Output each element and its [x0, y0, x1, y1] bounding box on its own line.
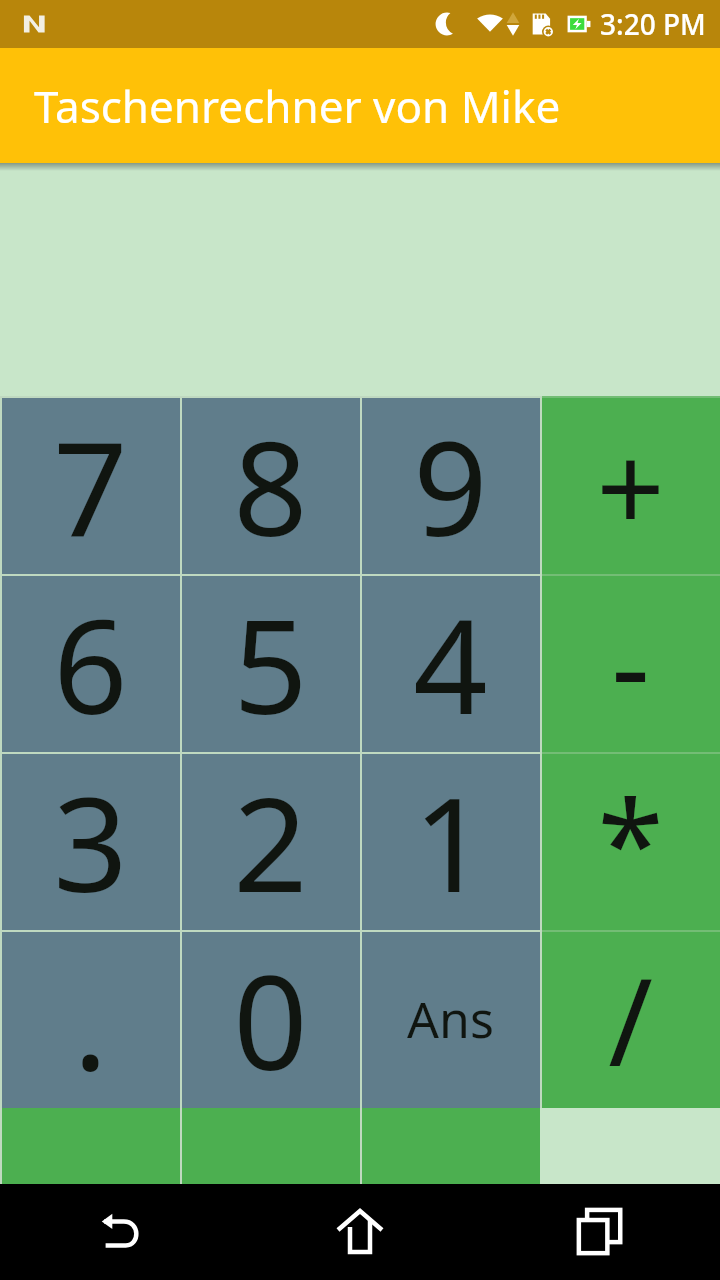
- staticText: 7: [53, 397, 128, 574]
- button[interactable]: Ans: [360, 930, 540, 1108]
- staticText: 3:20 PM: [600, 5, 706, 43]
- staticText: +: [596, 404, 665, 567]
- button[interactable]: Home: [240, 1184, 480, 1280]
- staticText: Ans: [407, 985, 494, 1053]
- staticText: DEL: [214, 1166, 327, 1242]
- button[interactable]: 1: [360, 752, 540, 930]
- staticText: Taschenrechner von Mike: [34, 76, 561, 136]
- button[interactable]: /: [540, 930, 720, 1108]
- button[interactable]: =: [0, 1108, 180, 1184]
- button[interactable]: AC: [360, 1108, 540, 1184]
- staticText: 5: [233, 575, 308, 752]
- staticText: -: [611, 582, 650, 745]
- button[interactable]: DEL: [180, 1108, 360, 1184]
- staticText: 0: [233, 931, 308, 1108]
- button[interactable]: 0: [180, 930, 360, 1108]
- button[interactable]: 3: [0, 752, 180, 930]
- staticText: =: [63, 1166, 118, 1242]
- button[interactable]: 2: [180, 752, 360, 930]
- staticText: 8: [233, 397, 308, 574]
- button[interactable]: *: [540, 752, 720, 930]
- button[interactable]: 8: [180, 396, 360, 574]
- button[interactable]: 4: [360, 574, 540, 752]
- staticText: 1: [413, 753, 488, 930]
- staticText: 9: [413, 397, 488, 574]
- staticText: AC: [411, 1166, 489, 1242]
- button[interactable]: 9: [360, 396, 540, 574]
- staticText: /: [608, 938, 653, 1101]
- button[interactable]: -: [540, 574, 720, 752]
- button[interactable]: Back: [0, 1184, 240, 1280]
- button[interactable]: 5: [180, 574, 360, 752]
- staticText: 2: [233, 753, 308, 930]
- staticText: 4: [413, 575, 488, 752]
- button[interactable]: +: [540, 396, 720, 574]
- button[interactable]: .: [0, 930, 180, 1108]
- button[interactable]: Recent apps: [480, 1184, 720, 1280]
- button[interactable]: 6: [0, 574, 180, 752]
- staticText: .: [73, 931, 108, 1108]
- button[interactable]: 7: [0, 396, 180, 574]
- staticText: 6: [53, 575, 128, 752]
- staticText: 3: [53, 753, 128, 930]
- staticText: *: [597, 760, 664, 923]
